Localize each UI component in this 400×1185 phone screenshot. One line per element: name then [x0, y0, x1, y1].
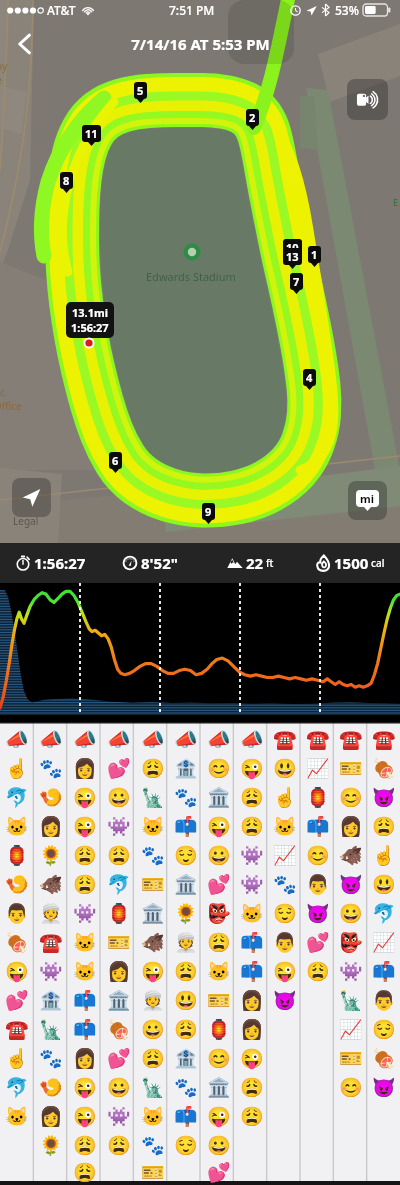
button[interactable]: 11: [82, 125, 101, 146]
button[interactable]: 6: [109, 452, 122, 473]
button[interactable]: Emoji column 1: [0, 722, 34, 1185]
staticText: 😊: [339, 786, 363, 808]
staticText: 📣: [5, 728, 29, 750]
staticText: 👩: [339, 815, 363, 837]
staticText: ☎️: [39, 931, 63, 953]
staticText: 👨: [273, 931, 297, 953]
staticText: ☎️: [372, 728, 396, 750]
staticText: 👾: [39, 960, 63, 982]
staticText: 13.1mi: [72, 305, 108, 320]
staticText: 🏮: [107, 902, 131, 924]
button[interactable]: 10: [283, 239, 302, 260]
staticText: 🐬: [107, 873, 131, 895]
button[interactable]: Emoji column 5: [136, 722, 169, 1185]
button[interactable]: 9: [202, 503, 215, 524]
staticText: 🏮: [207, 1018, 231, 1040]
staticText: 🐱: [73, 931, 97, 953]
staticText: 🎫: [107, 931, 131, 953]
staticText: 😩: [141, 757, 165, 779]
staticText: 😈: [372, 786, 396, 808]
button[interactable]: 13.1mi: [66, 302, 114, 338]
button[interactable]: Toggle units: [348, 481, 387, 520]
button[interactable]: 1500: [300, 543, 400, 583]
button[interactable]: 8: [60, 172, 73, 193]
button[interactable]: Emoji column 11: [334, 722, 367, 1185]
staticText: 🎫: [207, 989, 231, 1011]
staticText: 💕: [207, 1161, 231, 1183]
button[interactable]: Emoji column 4: [102, 722, 136, 1185]
staticText: 😩: [306, 960, 330, 982]
button[interactable]: 7: [290, 273, 303, 294]
staticText: 👩: [73, 1047, 97, 1069]
staticText: 53%: [335, 2, 359, 18]
staticText: 🐗: [39, 873, 63, 895]
button[interactable]: 13: [283, 248, 302, 269]
staticText: 👳: [174, 931, 198, 953]
staticText: 😩: [240, 1076, 264, 1098]
staticText: 🐗: [339, 844, 363, 866]
button[interactable]: 2: [246, 109, 259, 130]
staticText: 😩: [372, 815, 396, 837]
staticText: 🐾: [273, 873, 297, 895]
staticText: 5: [137, 83, 144, 98]
staticText: 👩: [240, 1018, 264, 1040]
staticText: 🐬: [5, 786, 29, 808]
staticText: 🗽: [39, 1018, 63, 1040]
staticText: 🏦: [174, 757, 198, 779]
staticText: 📣: [107, 728, 131, 750]
staticText: 📫: [73, 1018, 97, 1040]
button[interactable]: Emoji column 12: [367, 722, 400, 1185]
staticText: 😜: [73, 815, 97, 837]
staticText: 👨: [5, 902, 29, 924]
button[interactable]: 22: [200, 543, 300, 583]
button[interactable]: Emoji column 2: [34, 722, 68, 1185]
staticText: 📫: [174, 815, 198, 837]
staticText: 🐾: [141, 844, 165, 866]
button[interactable]: Emoji column 3: [68, 722, 102, 1185]
staticText: 🐗: [141, 931, 165, 953]
button[interactable]: 1: [308, 246, 321, 267]
staticText: 📫: [73, 989, 97, 1011]
staticText: 😈: [372, 1076, 396, 1098]
staticText: 🐱: [240, 902, 264, 924]
staticText: 👨: [372, 989, 396, 1011]
staticText: 😜: [141, 960, 165, 982]
staticText: 👨: [306, 873, 330, 895]
staticText: 😩: [107, 1134, 131, 1156]
button[interactable]: Center on my location: [12, 478, 51, 517]
staticText: 1: [311, 247, 318, 262]
button[interactable]: Share activity: [347, 79, 388, 120]
button[interactable]: Emoji column 6: [169, 722, 202, 1185]
staticText: 🐱: [141, 815, 165, 837]
staticText: 🐾: [174, 786, 198, 808]
button[interactable]: 1:56:27: [0, 543, 100, 583]
staticText: 💕: [5, 989, 29, 1011]
staticText: 😩: [107, 844, 131, 866]
staticText: 😩: [73, 1161, 97, 1183]
staticText: tic Office: [0, 385, 22, 413]
button[interactable]: 4: [303, 369, 316, 390]
button[interactable]: Back: [4, 26, 46, 62]
staticText: 😀: [207, 1134, 231, 1156]
staticText: 🌻: [39, 1134, 63, 1156]
staticText: ny e: [0, 59, 8, 87]
button[interactable]: 5: [134, 82, 147, 103]
staticText: 😀: [107, 1076, 131, 1098]
staticText: 9: [205, 504, 212, 519]
staticText: 👩: [39, 815, 63, 837]
staticText: ☎️: [306, 728, 330, 750]
staticText: 😜: [5, 960, 29, 982]
staticText: 👾: [240, 844, 264, 866]
staticText: 😜: [240, 1047, 264, 1069]
button[interactable]: Emoji column 8: [235, 722, 268, 1185]
button[interactable]: 8'52": [100, 543, 200, 583]
button[interactable]: Emoji column 10: [301, 722, 334, 1185]
staticText: 😜: [207, 815, 231, 837]
staticText: 👾: [73, 902, 97, 924]
staticText: 😩: [73, 873, 97, 895]
staticText: ☝️: [5, 1047, 29, 1069]
button[interactable]: Emoji column 9: [268, 722, 301, 1185]
button[interactable]: Emoji column 7: [202, 722, 235, 1185]
staticText: 7:51 PM: [169, 2, 215, 18]
staticText: 😊: [339, 1076, 363, 1098]
